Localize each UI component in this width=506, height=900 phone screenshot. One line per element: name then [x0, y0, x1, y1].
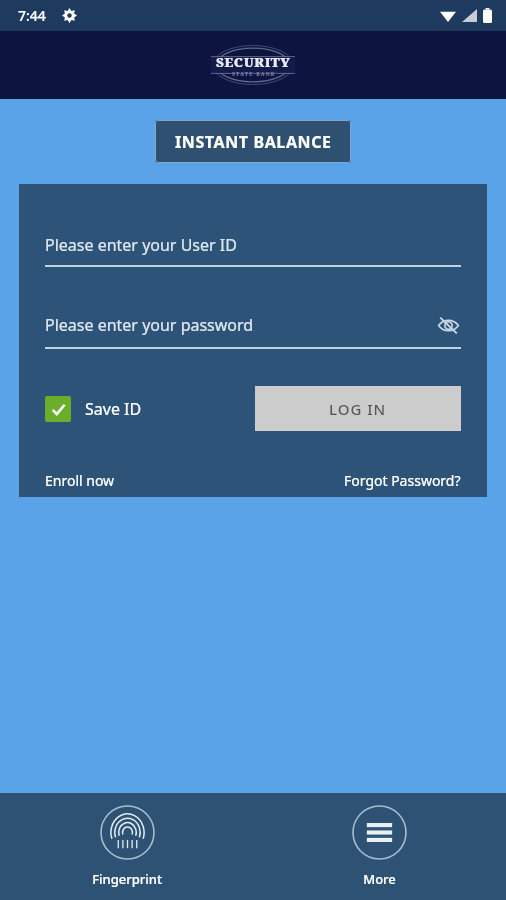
- staticText: Please enter your User ID: [45, 234, 237, 256]
- staticText: Forgot Password?: [344, 471, 461, 490]
- staticText: Save ID: [85, 398, 142, 420]
- staticText: 7:44: [18, 6, 46, 25]
- button[interactable]: Fingerprint: [92, 793, 162, 896]
- staticText: Fingerprint: [92, 870, 162, 888]
- button[interactable]: INSTANT BALANCE: [155, 120, 351, 163]
- button[interactable]: Save ID: [45, 396, 142, 422]
- button[interactable]: More: [352, 793, 407, 896]
- staticText: INSTANT BALANCE: [175, 131, 332, 153]
- staticText: Enroll now: [45, 471, 115, 490]
- button[interactable]: Please enter your User ID: [45, 234, 461, 267]
- staticText: LOG IN: [329, 399, 387, 419]
- button[interactable]: LOG IN: [255, 386, 461, 431]
- staticText: Please enter your password: [45, 314, 254, 336]
- button[interactable]: Show password: [435, 312, 461, 338]
- staticText: SECURITY: [216, 53, 291, 71]
- button[interactable]: Please enter your password: [45, 312, 461, 349]
- staticText: STATE BANK: [232, 71, 276, 78]
- button[interactable]: Enroll now: [45, 471, 115, 490]
- button[interactable]: Forgot Password?: [344, 471, 461, 490]
- staticText: More: [363, 870, 396, 888]
